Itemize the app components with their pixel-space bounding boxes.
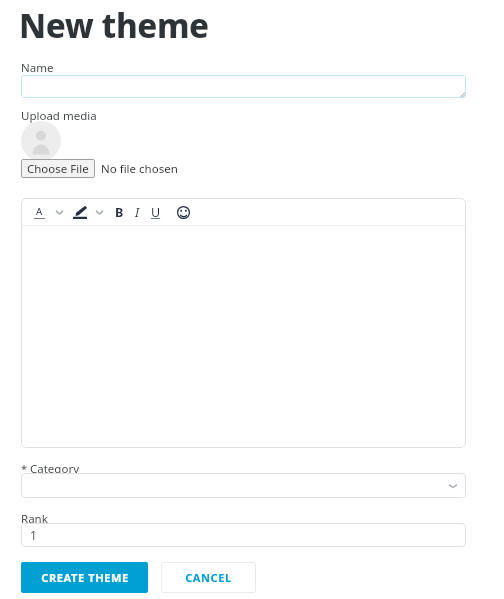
button[interactable]: Insert emoji — [175, 202, 192, 222]
button[interactable]: CANCEL — [161, 562, 256, 593]
staticText: New theme — [19, 3, 209, 48]
staticText: U — [151, 204, 161, 221]
button[interactable]: Highlight color options — [91, 202, 108, 222]
button[interactable]: Text color — [31, 202, 48, 222]
staticText: Choose File — [27, 161, 89, 177]
staticText: Name — [21, 60, 54, 76]
staticText: CANCEL — [185, 570, 232, 585]
button[interactable]: Choose File — [21, 159, 95, 178]
staticText: B — [115, 204, 124, 221]
button[interactable] — [21, 473, 466, 498]
button[interactable]: Text color options — [51, 202, 68, 222]
staticText: * — [21, 461, 28, 476]
button[interactable]: Current media preview — [21, 121, 61, 161]
button[interactable]: CREATE THEME — [21, 562, 148, 593]
staticText: Category — [30, 461, 80, 477]
staticText: CREATE THEME — [41, 570, 129, 585]
staticText: No file chosen — [101, 161, 178, 177]
button[interactable]: Highlight color — [71, 202, 88, 222]
button[interactable] — [21, 75, 466, 98]
staticText: Rank — [21, 511, 48, 527]
button[interactable]: Bold — [112, 202, 127, 222]
staticText: Upload media — [21, 108, 97, 124]
staticText: I — [135, 204, 140, 221]
button[interactable]: Underline — [148, 202, 163, 222]
staticText: A — [36, 205, 43, 218]
button[interactable]: Italic — [130, 202, 145, 222]
button[interactable]: 1 — [21, 523, 466, 547]
staticText: 1 — [30, 527, 37, 543]
